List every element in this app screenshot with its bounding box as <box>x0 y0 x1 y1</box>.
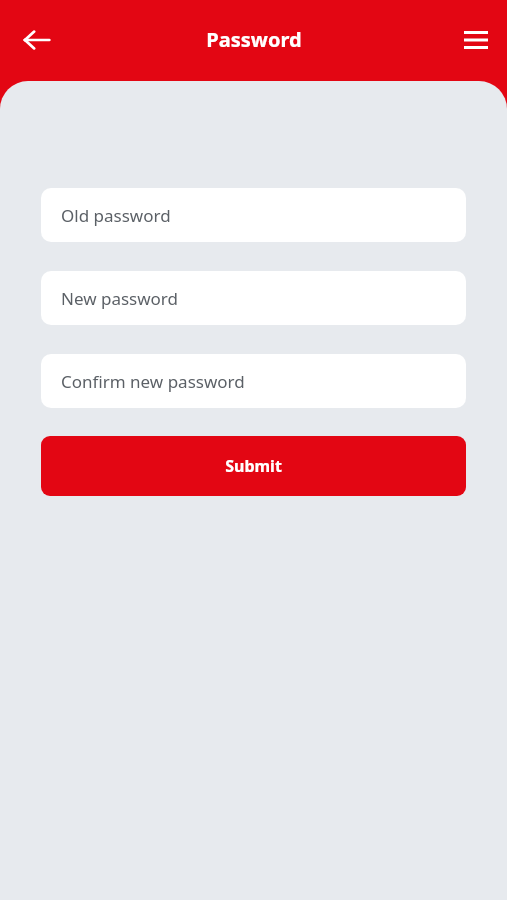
button[interactable]: Confirm new password <box>41 354 466 408</box>
button[interactable]: Menu <box>450 14 502 66</box>
button[interactable]: Submit <box>41 436 466 496</box>
button[interactable]: Back <box>10 13 64 67</box>
staticText: Password <box>206 26 302 53</box>
staticText: Confirm new password <box>61 370 245 393</box>
staticText: Submit <box>225 455 282 477</box>
staticText: Old password <box>61 204 171 227</box>
staticText: New password <box>61 287 179 310</box>
button[interactable]: Old password <box>41 188 466 242</box>
button[interactable]: New password <box>41 271 466 325</box>
